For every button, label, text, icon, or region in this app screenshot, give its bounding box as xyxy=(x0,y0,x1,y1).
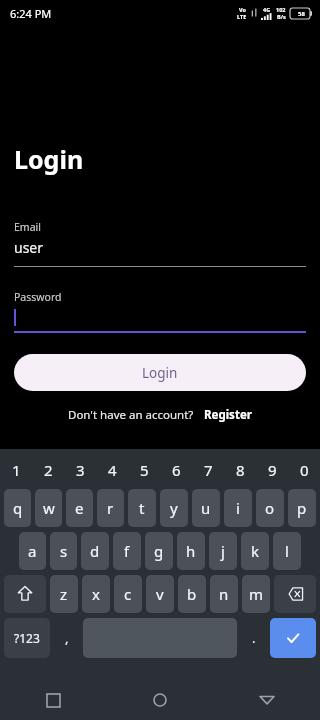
button[interactable]: m xyxy=(242,575,270,613)
staticText: 4G xyxy=(263,6,271,13)
staticText: a xyxy=(28,541,37,561)
staticText: q xyxy=(13,498,23,518)
button[interactable]: ?123 xyxy=(4,618,50,658)
button[interactable]: 3 xyxy=(64,457,96,483)
button[interactable]: j xyxy=(209,532,237,570)
button[interactable]: . xyxy=(241,618,266,658)
button[interactable]: l xyxy=(273,532,301,570)
button[interactable]: , xyxy=(54,618,79,658)
staticText: u xyxy=(201,498,211,518)
staticText: w xyxy=(43,498,55,518)
button[interactable]: Login xyxy=(14,354,306,391)
button[interactable]: i xyxy=(224,489,252,527)
staticText: user xyxy=(14,238,44,257)
staticText: x xyxy=(92,584,100,604)
button[interactable]: Enter xyxy=(270,618,316,658)
staticText: i xyxy=(236,498,240,518)
staticText: 102 xyxy=(276,6,286,13)
button[interactable]: 1 xyxy=(0,457,32,483)
staticText: h xyxy=(186,541,196,561)
staticText: Register xyxy=(204,407,252,423)
button[interactable]: Shift xyxy=(4,575,46,613)
staticText: 6:24 PM xyxy=(10,6,52,21)
button[interactable]: v xyxy=(146,575,174,613)
button[interactable]: Backspace xyxy=(274,575,316,613)
button[interactable]: 7 xyxy=(192,457,224,483)
staticText: c xyxy=(124,584,132,604)
button[interactable]: d xyxy=(81,532,109,570)
staticText: b xyxy=(187,584,197,604)
button[interactable]: h xyxy=(177,532,205,570)
button[interactable]: 5 xyxy=(128,457,160,483)
staticText: z xyxy=(60,584,68,604)
staticText: p xyxy=(297,498,307,518)
button[interactable]: u xyxy=(192,489,220,527)
button[interactable]: f xyxy=(113,532,141,570)
staticText: m xyxy=(249,584,264,604)
button[interactable]: Register xyxy=(204,407,252,423)
staticText: 2 xyxy=(44,460,53,480)
staticText: 8 xyxy=(236,460,245,480)
staticText: 4 xyxy=(108,460,117,480)
button[interactable]: b xyxy=(178,575,206,613)
button[interactable]: x xyxy=(82,575,110,613)
button[interactable]: 6 xyxy=(160,457,192,483)
button[interactable]: Back xyxy=(213,680,320,720)
staticText: Login xyxy=(14,142,84,176)
staticText: v xyxy=(156,584,164,604)
staticText: Password xyxy=(14,290,62,304)
button[interactable]: w xyxy=(35,489,62,527)
staticText: . xyxy=(252,629,256,647)
staticText: k xyxy=(251,541,260,561)
staticText: j xyxy=(221,541,225,561)
button[interactable]: y xyxy=(160,489,188,527)
button[interactable]: 8 xyxy=(224,457,256,483)
button[interactable]: s xyxy=(50,532,77,570)
button[interactable]: z xyxy=(50,575,78,613)
button[interactable]: r xyxy=(97,489,124,527)
staticText: t xyxy=(139,498,145,518)
staticText: B/s xyxy=(277,13,286,20)
staticText: 7 xyxy=(204,460,213,480)
staticText: l xyxy=(285,541,289,561)
staticText: e xyxy=(75,498,84,518)
button[interactable]: n xyxy=(210,575,238,613)
staticText: r xyxy=(107,498,114,518)
button[interactable]: e xyxy=(66,489,93,527)
staticText: 1 xyxy=(12,460,21,480)
button[interactable]: 4 xyxy=(96,457,128,483)
button[interactable]: Home xyxy=(106,680,213,720)
staticText: d xyxy=(90,541,100,561)
staticText: Vo xyxy=(239,6,246,13)
button[interactable]: 9 xyxy=(256,457,288,483)
button[interactable]: 0 xyxy=(288,457,320,483)
staticText: n xyxy=(219,584,229,604)
staticText: Email xyxy=(14,220,41,234)
staticText: Don't have an account? xyxy=(68,407,194,423)
staticText: 0 xyxy=(300,460,309,480)
staticText: , xyxy=(65,629,69,647)
staticText: o xyxy=(265,498,275,518)
button[interactable]: Email xyxy=(14,220,306,267)
staticText: Login xyxy=(142,364,178,382)
button[interactable]: q xyxy=(4,489,31,527)
staticText: 9 xyxy=(268,460,277,480)
button[interactable]: p xyxy=(288,489,316,527)
staticText: 3 xyxy=(76,460,85,480)
button[interactable]: c xyxy=(114,575,142,613)
button[interactable]: t xyxy=(128,489,156,527)
staticText: ?123 xyxy=(14,630,40,646)
button[interactable]: g xyxy=(145,532,173,570)
button[interactable]: a xyxy=(19,532,46,570)
button[interactable]: 2 xyxy=(32,457,64,483)
staticText: LTE xyxy=(237,13,247,20)
button[interactable]: Password xyxy=(14,290,306,333)
button[interactable]: Recents xyxy=(0,680,106,720)
staticText: s xyxy=(60,541,68,561)
staticText: 5 xyxy=(140,460,149,480)
button[interactable]: k xyxy=(241,532,269,570)
button[interactable]: o xyxy=(256,489,284,527)
staticText: 58 xyxy=(298,10,305,18)
staticText: f xyxy=(124,541,130,561)
